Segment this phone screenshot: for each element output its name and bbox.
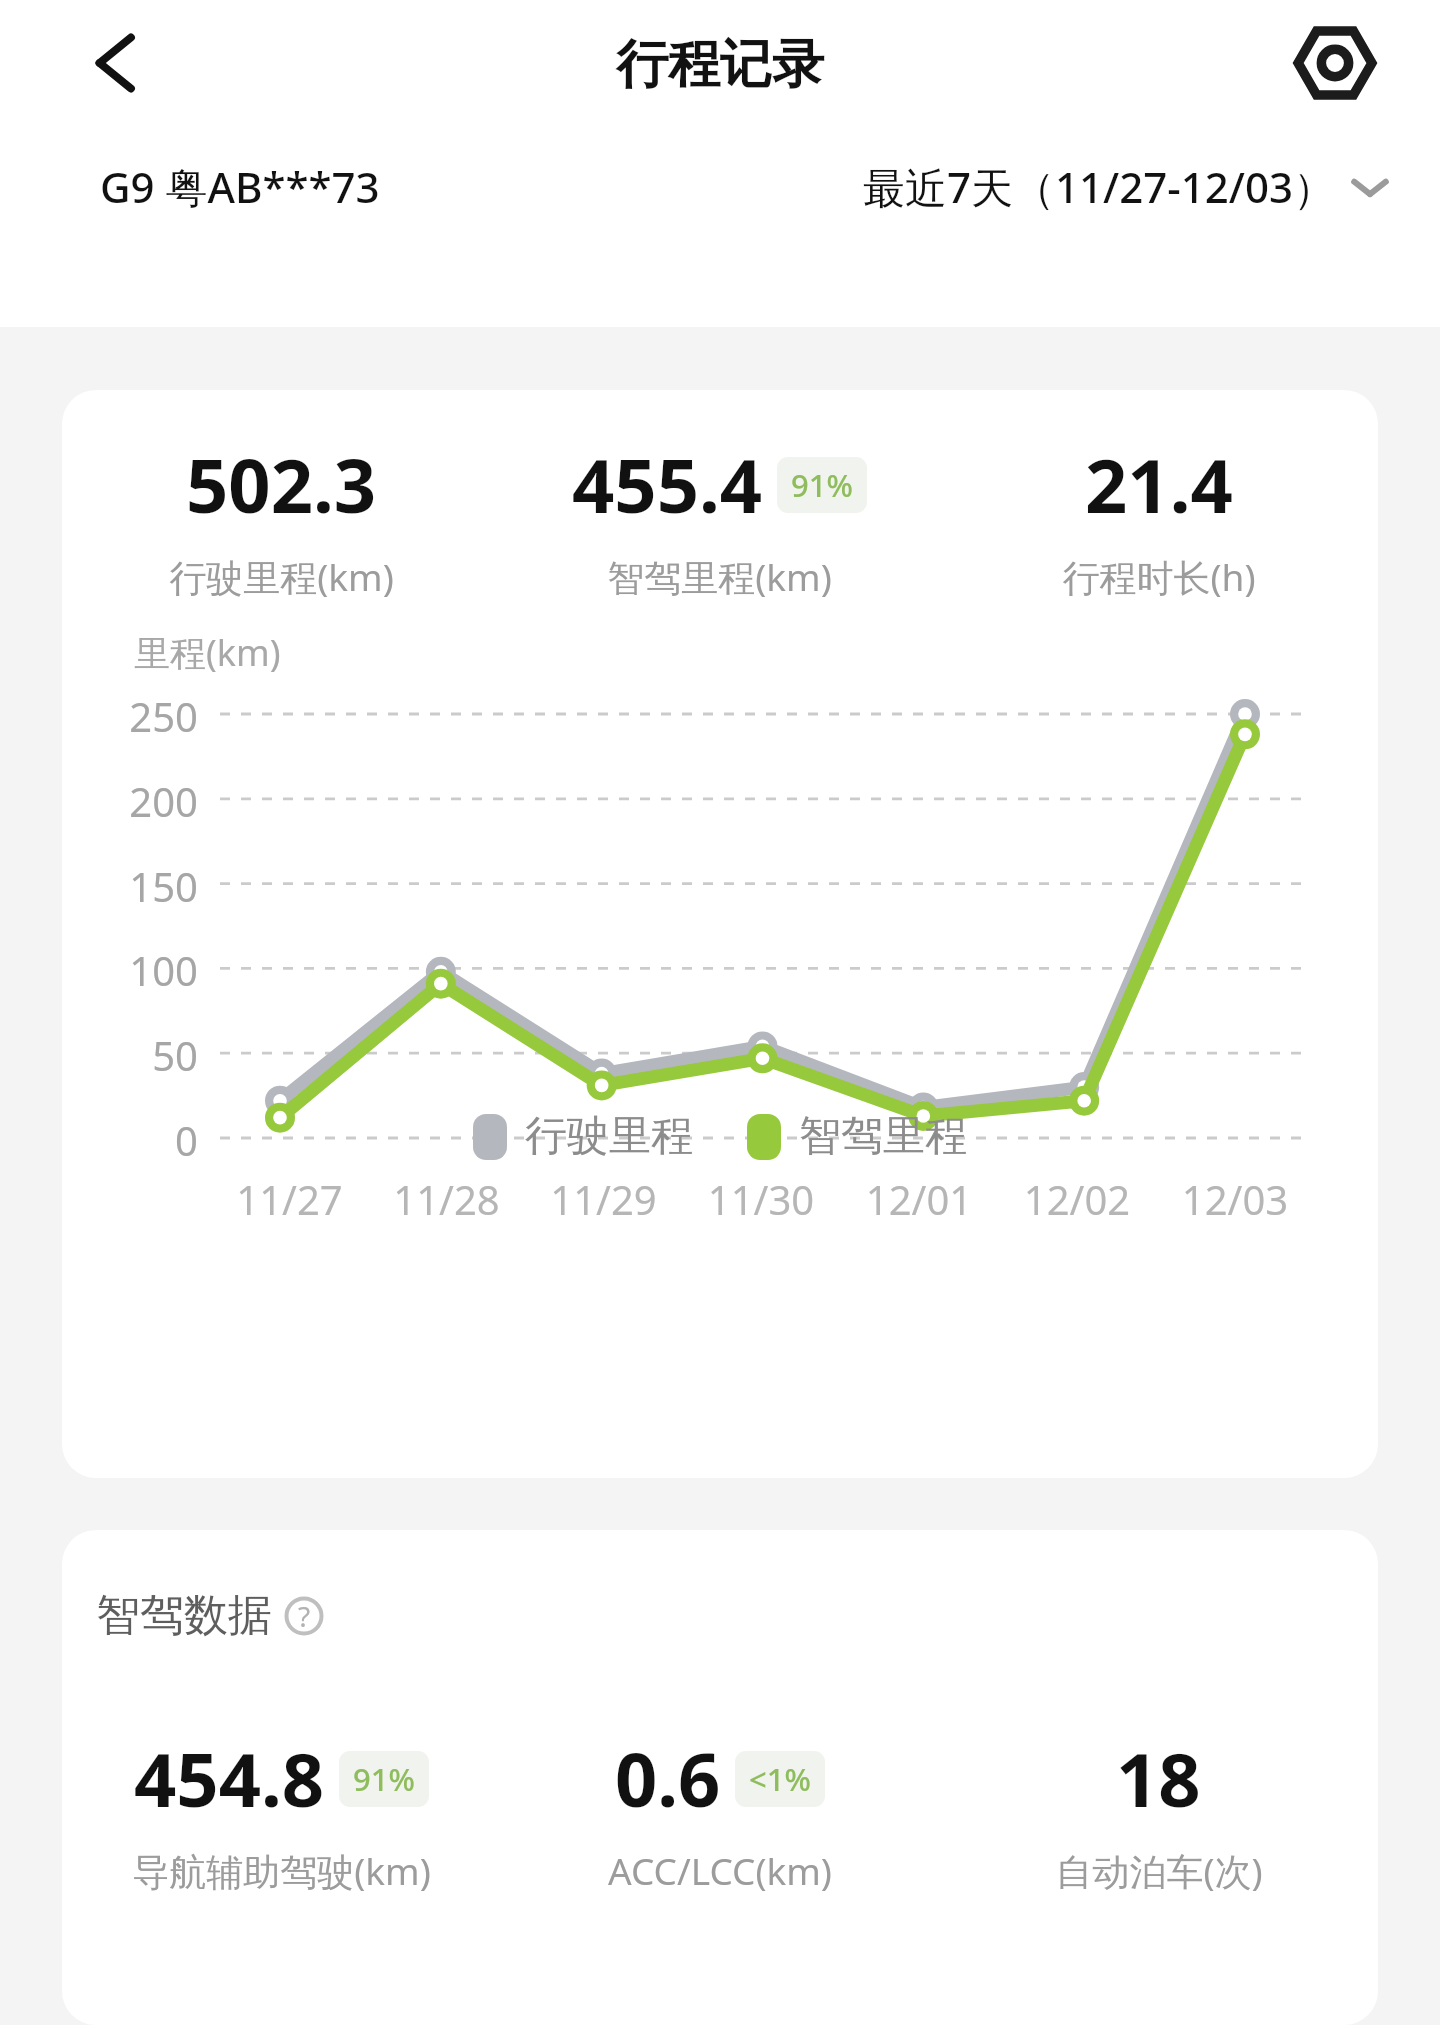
staticText: 行驶里程 [525, 1110, 693, 1163]
staticText: 12/03 [1156, 1172, 1314, 1226]
staticText: 150 [62, 859, 198, 913]
button[interactable]: 502.3 [62, 434, 500, 602]
button[interactable]: Settings [1280, 8, 1390, 118]
staticText: 11/29 [525, 1172, 682, 1226]
staticText: 11/27 [211, 1172, 368, 1226]
staticText: 455.4 [572, 434, 763, 535]
button[interactable]: 454.8 [62, 1728, 500, 1896]
staticText: 12/01 [840, 1172, 998, 1226]
staticText: 91% [791, 464, 853, 506]
staticText: ACC/LCC(km) [608, 1845, 832, 1895]
staticText: 11/30 [682, 1172, 840, 1226]
staticText: <1% [749, 1758, 811, 1800]
button[interactable]: 行驶里程 [473, 1110, 693, 1163]
staticText: G9 粤AB***73 [100, 158, 380, 215]
staticText: 502.3 [186, 434, 377, 535]
staticText: 智驾里程 [799, 1110, 967, 1163]
staticText: 行驶里程(km) [169, 551, 394, 602]
staticText: 自动泊车(次) [1055, 1845, 1263, 1896]
staticText: 50 [62, 1028, 198, 1082]
staticText: 智驾里程(km) [607, 551, 832, 602]
staticText: 11/28 [368, 1172, 525, 1226]
staticText: 250 [62, 689, 198, 743]
button[interactable]: Back [62, 8, 172, 118]
button[interactable]: 最近7天（11/27-12/03） [863, 158, 1392, 215]
button[interactable]: 智驾里程 [747, 1110, 967, 1163]
staticText: 0 [62, 1113, 198, 1167]
staticText: 21.4 [1085, 434, 1233, 535]
staticText: ? [298, 1597, 311, 1635]
staticText: 行程时长(h) [1062, 551, 1256, 602]
staticText: 导航辅助驾驶(km) [132, 1845, 431, 1896]
staticText: 200 [62, 774, 198, 828]
staticText: 454.8 [134, 1728, 325, 1829]
button[interactable]: 455.4 [500, 434, 939, 602]
staticText: 0.6 [615, 1728, 721, 1829]
staticText: 行程记录 [616, 32, 824, 98]
staticText: 里程(km) [134, 628, 281, 677]
staticText: 100 [62, 943, 198, 997]
staticText: 最近7天（11/27-12/03） [863, 158, 1336, 215]
staticText: 12/02 [998, 1172, 1156, 1226]
button[interactable]: 0.6 [500, 1728, 939, 1895]
button[interactable]: 21.4 [939, 434, 1378, 602]
staticText: 18 [1116, 1728, 1201, 1829]
button[interactable]: 18 [939, 1728, 1378, 1896]
staticText: 91% [353, 1758, 415, 1800]
button[interactable]: 智驾数据 [96, 1588, 324, 1643]
staticText: 智驾数据 [96, 1588, 272, 1643]
